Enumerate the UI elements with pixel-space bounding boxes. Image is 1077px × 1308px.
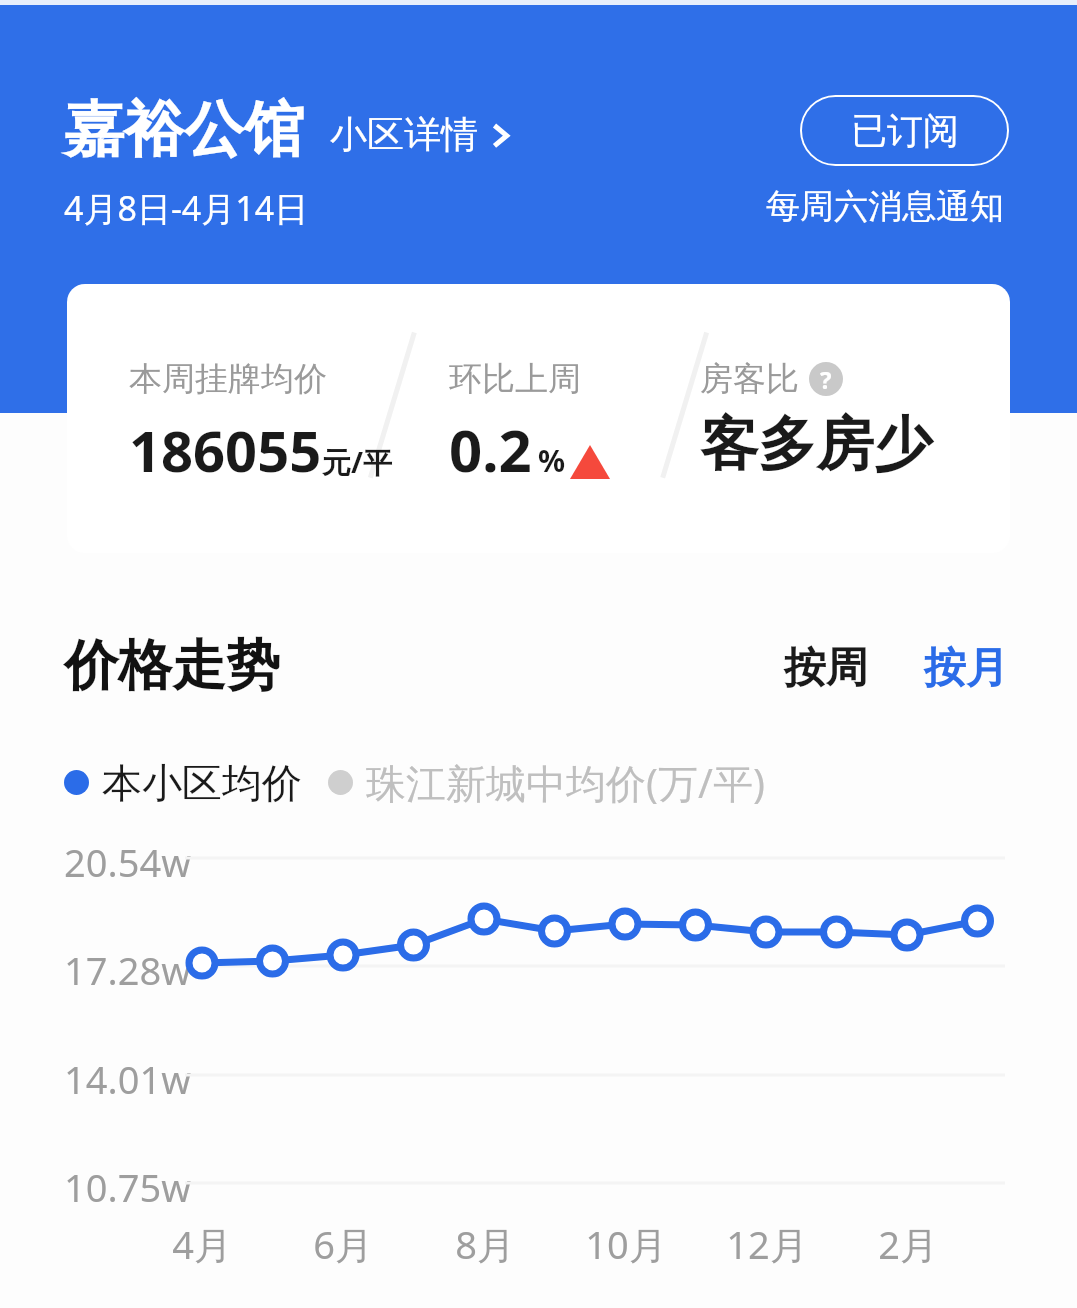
staticText: 186055 — [129, 412, 322, 488]
button[interactable]: 按月 — [924, 642, 1008, 695]
button[interactable]: 嘉裕公馆 — [64, 92, 514, 168]
staticText: 12月 — [712, 1218, 822, 1270]
staticText: 元/平 — [322, 442, 393, 482]
staticText: 本小区均价 — [102, 758, 302, 808]
staticText: 嘉裕公馆 — [64, 92, 304, 168]
staticText: 6月 — [288, 1218, 398, 1270]
staticText: 20.54w — [64, 836, 191, 888]
staticText: ? — [820, 363, 832, 396]
button[interactable]: 已订阅 — [800, 95, 1009, 166]
staticText: 4月8日-4月14日 — [64, 185, 309, 231]
staticText: 17.28w — [64, 944, 191, 996]
staticText: 按周 — [784, 642, 868, 695]
staticText: 10.75w — [64, 1161, 191, 1213]
staticText: % — [538, 440, 566, 481]
staticText: 客多房少 — [700, 408, 932, 481]
button[interactable]: 按周 — [784, 642, 868, 695]
staticText: 4月 — [147, 1218, 257, 1270]
staticText: 按月 — [924, 642, 1008, 695]
staticText: 每周六消息通知 — [766, 185, 1004, 228]
staticText: 8月 — [430, 1218, 540, 1270]
staticText: 10月 — [571, 1218, 681, 1270]
staticText: 价格走势 — [64, 632, 280, 700]
staticText: 珠江新城中均价(万/平) — [366, 755, 765, 810]
staticText: 房客比 — [700, 358, 799, 400]
staticText: 2月 — [853, 1218, 963, 1270]
staticText: 已订阅 — [851, 108, 959, 153]
staticText: 小区详情 — [330, 111, 478, 158]
button[interactable]: 本周挂牌均价 — [67, 284, 1010, 553]
staticText: 本周挂牌均价 — [129, 358, 327, 400]
button[interactable]: 房客比说明 — [809, 362, 843, 396]
staticText: 环比上周 — [449, 358, 581, 400]
staticText: 14.01w — [64, 1053, 191, 1105]
staticText: 0.2 — [449, 410, 532, 489]
